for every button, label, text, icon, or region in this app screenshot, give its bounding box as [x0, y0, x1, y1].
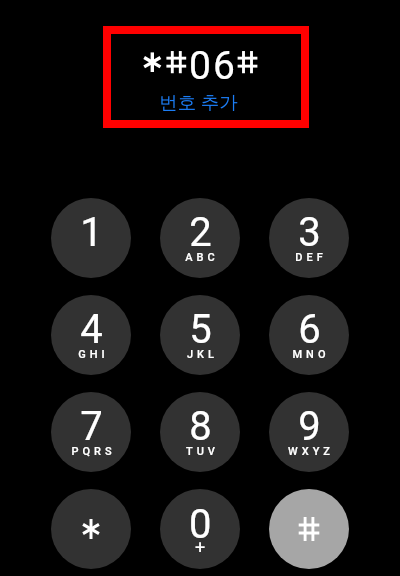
staticText: 0 — [189, 501, 212, 548]
staticText: ABC — [185, 251, 219, 264]
button[interactable]: 4 — [51, 295, 131, 375]
staticText: MNO — [292, 348, 330, 361]
button[interactable]: 6 — [269, 295, 349, 375]
staticText: 6 — [213, 43, 235, 87]
button[interactable]: Pound — [269, 489, 349, 569]
staticText: PQRS — [71, 445, 116, 458]
staticText: TUV — [186, 445, 219, 458]
staticText: 4 — [80, 306, 103, 353]
staticText: 1 — [80, 209, 103, 256]
staticText: GHI — [78, 348, 109, 361]
button[interactable]: 2 — [160, 198, 240, 278]
button[interactable]: Star — [51, 489, 131, 569]
staticText: 6 — [298, 306, 321, 353]
staticText: 5 — [189, 306, 212, 353]
staticText: 7 — [80, 403, 103, 450]
button[interactable]: 번호 추가 — [159, 91, 238, 114]
button[interactable]: 9 — [269, 392, 349, 472]
staticText: + — [195, 536, 206, 557]
button[interactable]: 1 — [51, 198, 131, 278]
staticText: 2 — [189, 209, 212, 256]
staticText: 0 — [189, 43, 211, 87]
staticText: 8 — [189, 403, 212, 450]
button[interactable]: 8 — [160, 392, 240, 472]
staticText: JKL — [187, 348, 218, 361]
button[interactable]: 7 — [51, 392, 131, 472]
button[interactable]: 5 — [160, 295, 240, 375]
staticText: DEF — [295, 251, 327, 264]
button[interactable]: 3 — [269, 198, 349, 278]
button[interactable]: 0 — [160, 489, 240, 569]
staticText: 9 — [298, 403, 321, 450]
staticText: WXYZ — [288, 445, 334, 458]
staticText: 3 — [298, 209, 321, 256]
staticText: 번호 추가 — [159, 91, 238, 114]
